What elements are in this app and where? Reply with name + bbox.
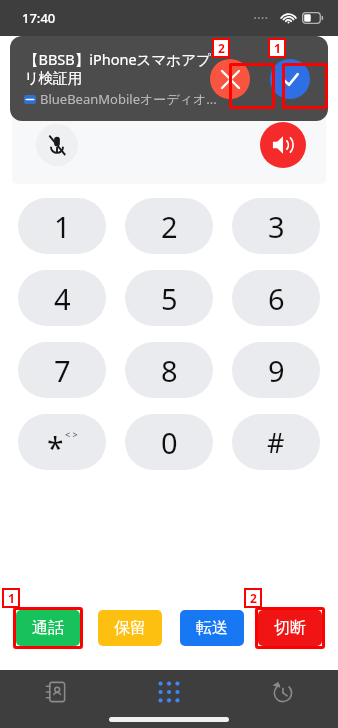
button[interactable]: 7 [18,342,106,398]
staticText: 8 [161,351,178,390]
staticText: # [267,424,285,461]
staticText: 2 [218,40,225,56]
staticText: 4 [54,279,71,318]
staticText: 1 [54,207,71,246]
button[interactable]: 転送 [180,610,244,646]
button[interactable]: 切断 [258,610,322,646]
button[interactable]: History [259,670,305,714]
staticText: 3 [268,207,285,246]
button[interactable]: 3 [232,198,320,254]
staticText: 2 [161,207,178,246]
staticText: 【BBSB】iPhoneスマホアプリ検証... [52,56,286,75]
staticText: 9 [268,351,285,390]
button[interactable]: 4 [18,270,106,326]
staticText: 5 [161,279,178,318]
button[interactable]: 6 [232,270,320,326]
button[interactable]: Accept [270,59,310,99]
button[interactable]: # [232,414,320,470]
staticText: 0 [161,423,178,462]
staticText: < > [65,428,78,440]
button[interactable]: 【BBSB】iPhoneスマホアプ リ検証用 [10,36,328,121]
staticText: 保留 [114,618,146,638]
staticText: 通話 [32,618,64,638]
staticText: 2 [250,590,257,606]
staticText: 転送 [196,618,228,638]
button[interactable]: 2 [125,198,213,254]
button[interactable]: Keypad [146,670,192,714]
staticText: 【BBSB】iPhoneスマホアプ リ検証用 [24,49,211,87]
button[interactable]: 1 [18,198,106,254]
button[interactable]: 【BBSB】iPhoneスマホアプリ検証... [12,44,326,184]
staticText: BlueBeanMobileオーディオ... [40,90,217,108]
button[interactable]: Contacts [33,670,79,714]
staticText: 17:40 [22,9,56,27]
staticText: 1 [274,40,281,56]
staticText: * [47,427,64,468]
staticText: 切断 [274,618,306,638]
button[interactable]: 9 [232,342,320,398]
button[interactable]: 0 [125,414,213,470]
button[interactable]: * [18,414,106,470]
button[interactable]: 通話 [16,610,80,646]
staticText: 1 [8,590,15,606]
button[interactable]: 保留 [98,610,162,646]
button[interactable]: Mute [36,124,78,166]
button[interactable]: 5 [125,270,213,326]
button[interactable]: Speaker [260,122,306,168]
staticText: 7 [54,351,71,390]
button[interactable]: Decline [210,59,250,99]
button[interactable]: 8 [125,342,213,398]
staticText: 6 [268,279,285,318]
